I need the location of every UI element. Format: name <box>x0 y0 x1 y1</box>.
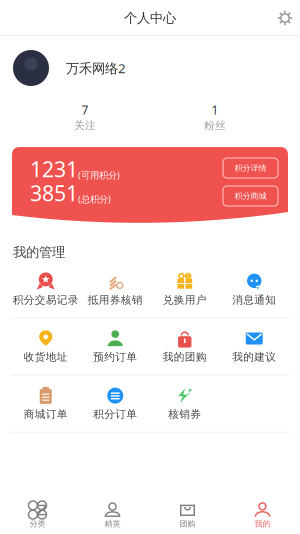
staticText: 兑换用户 <box>163 293 207 306</box>
staticText: 积分商城 <box>234 191 266 201</box>
staticText: 积分详情 <box>234 163 266 173</box>
button[interactable]: Group buy <box>150 480 225 534</box>
button[interactable]: 7 <box>20 102 150 132</box>
staticText: 抵用券核销 <box>88 293 143 306</box>
button[interactable]: Elite <box>75 480 150 534</box>
staticText: 分类 <box>29 519 45 529</box>
button[interactable]: Settings <box>270 3 300 33</box>
staticText: 预约订单 <box>93 350 137 364</box>
staticText: 我的管理 <box>13 244 65 260</box>
button[interactable]: 我的团购 <box>150 318 219 375</box>
staticText: 团购 <box>179 519 195 529</box>
staticText: 收货地址 <box>24 350 68 364</box>
staticText: 1231 <box>30 155 78 183</box>
button[interactable]: 预约订单 <box>80 318 150 375</box>
staticText: 商城订单 <box>24 408 68 421</box>
staticText: (可用积分) <box>78 169 120 181</box>
staticText: 个人中心 <box>124 10 176 26</box>
button[interactable]: 积分订单 <box>80 376 150 432</box>
staticText: 核销券 <box>168 408 201 421</box>
staticText: 1 <box>211 102 218 118</box>
button[interactable]: Categories <box>0 480 75 534</box>
button[interactable]: 商城订单 <box>11 376 80 432</box>
staticText: 我的 <box>254 519 270 529</box>
staticText: 消息通知 <box>232 293 276 306</box>
button[interactable]: 积分详情 <box>223 158 278 178</box>
staticText: 3851 <box>30 179 78 207</box>
button[interactable]: Mine <box>225 480 300 534</box>
staticText: 关注 <box>74 119 96 132</box>
staticText: 7 <box>81 102 88 118</box>
staticText: 积分交易记录 <box>13 293 79 306</box>
button[interactable]: 消息通知 <box>219 261 289 317</box>
staticText: (总积分) <box>78 193 111 205</box>
button[interactable]: 兑换用户 <box>150 261 219 317</box>
button[interactable]: 1 <box>150 102 280 132</box>
staticText: 积分订单 <box>93 408 137 421</box>
button[interactable]: 积分交易记录 <box>11 261 80 317</box>
staticText: 精英 <box>104 519 120 529</box>
staticText: 万禾网络2 <box>66 59 126 77</box>
staticText: 我的团购 <box>163 350 207 364</box>
staticText: 我的建议 <box>232 350 276 364</box>
staticText: 粉丝 <box>204 119 226 132</box>
button[interactable]: 抵用券核销 <box>80 261 150 317</box>
button[interactable]: 我的建议 <box>219 318 289 375</box>
button[interactable]: 万禾网络2 <box>0 36 300 102</box>
button[interactable]: 核销券 <box>150 376 219 432</box>
button[interactable]: 积分商城 <box>223 186 278 206</box>
button[interactable]: 收货地址 <box>11 318 80 375</box>
